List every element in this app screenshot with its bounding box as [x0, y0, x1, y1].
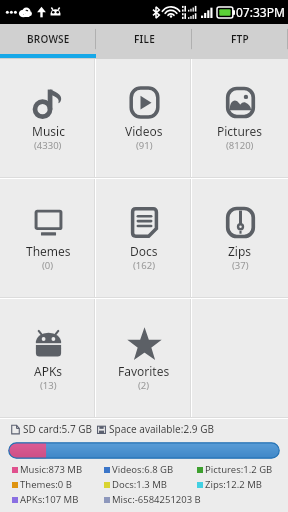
- button[interactable]: Zips: [192, 179, 288, 299]
- staticText: Videos: [125, 123, 163, 139]
- staticText: (162): [133, 259, 156, 272]
- staticText: Music: [32, 123, 65, 139]
- staticText: Pictures:1.2 GB: [205, 463, 273, 476]
- button[interactable]: Videos: [96, 59, 192, 179]
- staticText: Docs:1.3 MB: [112, 478, 168, 491]
- button[interactable]: FTP: [192, 24, 288, 59]
- staticText: SD card:5.7 GB: [23, 422, 93, 436]
- staticText: Favorites: [118, 363, 170, 379]
- staticText: Themes: [26, 243, 71, 259]
- button[interactable]: Favorites: [96, 299, 192, 419]
- staticText: (91): [136, 139, 153, 152]
- button[interactable]: Docs: [96, 179, 192, 299]
- staticText: Zips:12.2 MB: [205, 478, 262, 491]
- button[interactable]: BROWSE: [0, 24, 96, 59]
- button[interactable]: APKs: [0, 299, 96, 419]
- staticText: APKs: [34, 363, 63, 379]
- staticText: (4330): [34, 139, 62, 152]
- staticText: Videos:6.8 GB: [112, 463, 174, 476]
- staticText: Music:873 MB: [20, 463, 83, 476]
- staticText: (37): [232, 259, 249, 272]
- staticText: FILE: [134, 32, 155, 46]
- staticText: Pictures: [217, 123, 263, 139]
- staticText: Themes:0 B: [20, 478, 72, 491]
- staticText: Zips: [228, 243, 252, 259]
- button[interactable]: Pictures: [192, 59, 288, 179]
- staticText: (2): [138, 379, 150, 392]
- staticText: (0): [42, 259, 54, 272]
- staticText: BROWSE: [27, 32, 70, 46]
- staticText: FTP: [231, 32, 249, 46]
- button[interactable]: FILE: [96, 24, 192, 59]
- staticText: (13): [40, 379, 57, 392]
- button[interactable]: Themes: [0, 179, 96, 299]
- staticText: Space available:2.9 GB: [109, 422, 214, 436]
- staticText: (8120): [226, 139, 254, 152]
- staticText: 07:33PM: [236, 4, 285, 20]
- staticText: Docs: [130, 243, 158, 259]
- staticText: Misc:-6584251203 B: [112, 493, 201, 506]
- staticText: APKs:107 MB: [20, 493, 79, 506]
- button[interactable]: Music: [0, 59, 96, 179]
